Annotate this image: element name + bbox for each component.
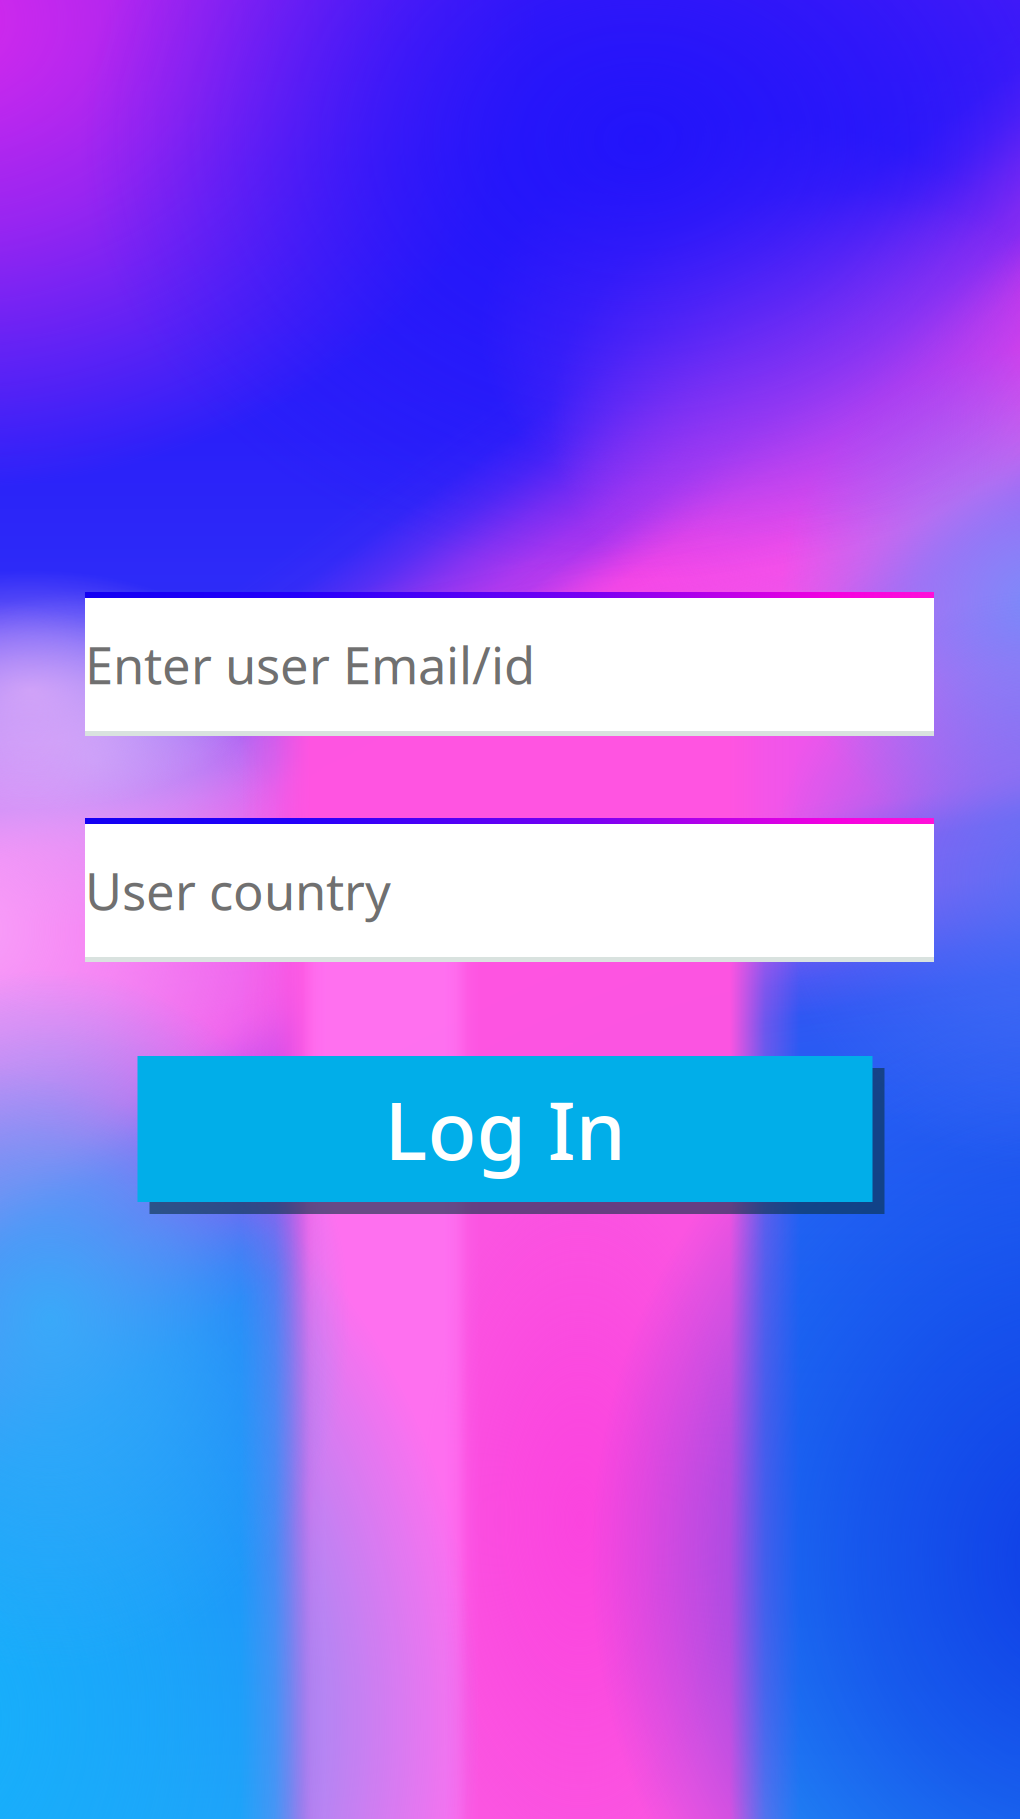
button[interactable]: User country bbox=[85, 818, 934, 962]
staticText: User country bbox=[85, 857, 391, 924]
button[interactable]: Log In bbox=[137, 1056, 872, 1202]
staticText: Enter user Email/id bbox=[85, 631, 535, 698]
staticText: Log In bbox=[384, 1076, 625, 1182]
button[interactable]: Enter user Email/id bbox=[85, 592, 934, 736]
